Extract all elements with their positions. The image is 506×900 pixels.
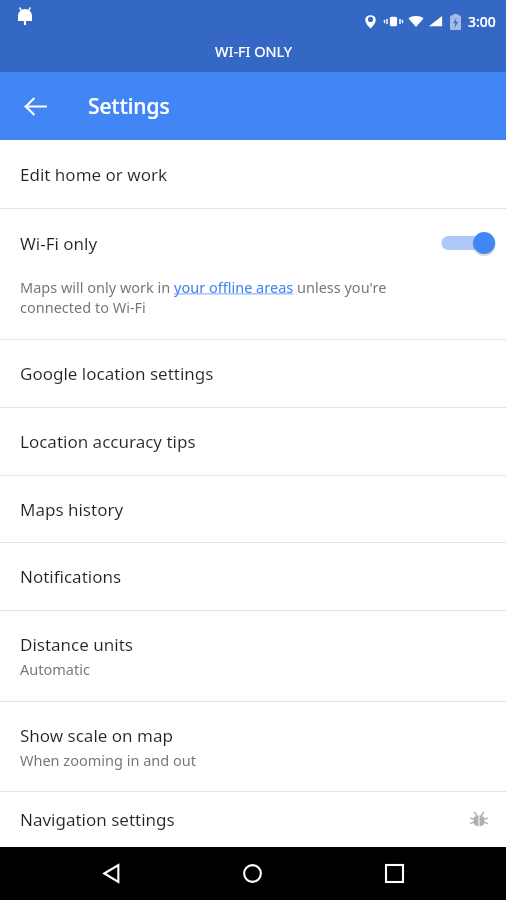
staticText: Maps will only work in your offline area… [20,277,458,318]
button[interactable]: Back [14,85,56,127]
staticText: Navigation settings [20,808,175,831]
staticText: Maps history [20,498,124,521]
button[interactable]: Edit home or work [0,140,506,208]
button[interactable]: Show scale on map [0,702,506,791]
button[interactable]: Google location settings [0,340,506,407]
staticText: Google location settings [20,362,214,385]
staticText: 3:00 [468,12,496,31]
staticText: WI-FI ONLY [215,41,292,61]
staticText: Notifications [20,565,122,588]
staticText: Location accuracy tips [20,430,196,453]
button[interactable]: Home [222,847,282,900]
staticText: Automatic [20,659,90,679]
button[interactable] [438,223,494,263]
button[interactable]: Recents [364,847,424,900]
staticText: Show scale on map [20,724,173,747]
button[interactable]: Wi-Fi only [0,209,506,277]
button[interactable]: Distance units [0,611,506,701]
button[interactable]: Back [81,847,141,900]
staticText: Edit home or work [20,163,168,186]
staticText: When zooming in and out [20,750,196,770]
staticText: Distance units [20,633,133,656]
staticText: Settings [88,92,170,121]
staticText: Wi-Fi only [20,232,98,255]
button[interactable]: Notifications [0,543,506,610]
button[interactable]: Navigation settings [0,792,506,847]
button[interactable]: Maps history [0,476,506,542]
button[interactable]: Location accuracy tips [0,408,506,475]
